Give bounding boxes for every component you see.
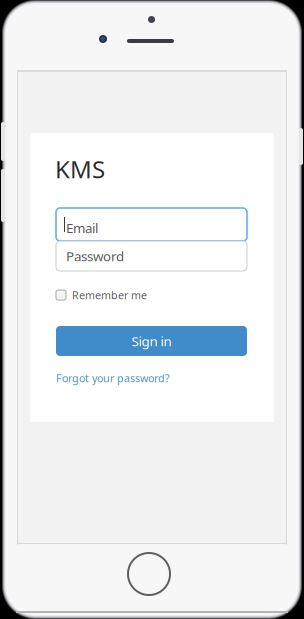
staticText: Forgot your password? xyxy=(56,371,170,385)
staticText: KMS xyxy=(55,153,105,185)
button[interactable]: Forgot your password? xyxy=(56,371,170,385)
staticText: Email xyxy=(66,219,98,237)
button[interactable]: Sign in xyxy=(56,326,247,356)
staticText: Password xyxy=(66,247,124,265)
staticText: Remember me xyxy=(72,288,147,302)
button[interactable]: Remember me xyxy=(56,288,147,302)
staticText: Sign in xyxy=(131,332,171,350)
